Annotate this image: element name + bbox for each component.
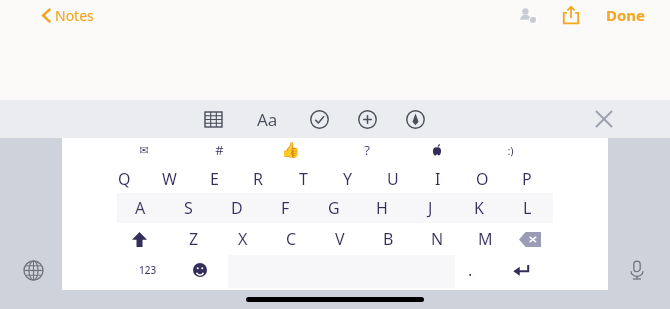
button[interactable]: B xyxy=(369,225,407,253)
button[interactable]: Apple xyxy=(421,138,453,162)
staticText: Y xyxy=(343,168,353,190)
button[interactable]: X xyxy=(224,225,262,253)
button[interactable]: Markup xyxy=(398,102,432,136)
button[interactable]: Table xyxy=(196,102,230,136)
button[interactable]: U xyxy=(374,164,412,194)
staticText: Q xyxy=(118,168,131,190)
staticText: D xyxy=(231,197,243,219)
staticText: M xyxy=(478,228,493,250)
staticText: V xyxy=(335,228,345,250)
staticText: R xyxy=(253,168,263,190)
staticText: U xyxy=(387,168,399,190)
button[interactable]: ? xyxy=(351,138,383,162)
button[interactable]: D xyxy=(218,193,256,223)
button[interactable]: K xyxy=(460,193,498,223)
staticText: ✉ xyxy=(139,144,149,157)
staticText: W xyxy=(162,168,177,190)
staticText: 123 xyxy=(139,263,157,277)
button[interactable]: R xyxy=(239,164,277,194)
staticText: Notes xyxy=(55,6,94,25)
button[interactable]: Emoji xyxy=(184,255,216,285)
button[interactable]: S xyxy=(169,193,207,223)
staticText: 👍 xyxy=(281,141,300,159)
button[interactable]: G xyxy=(315,193,353,223)
staticText: O xyxy=(476,168,489,190)
button[interactable]: Q xyxy=(105,164,143,194)
staticText: P xyxy=(522,168,532,190)
staticText: B xyxy=(383,228,394,250)
button[interactable]: N xyxy=(418,225,456,253)
button[interactable]: A xyxy=(121,193,159,223)
button[interactable]: F xyxy=(266,193,304,223)
button[interactable]: Shift xyxy=(122,225,156,253)
staticText: :) xyxy=(507,143,514,158)
staticText: Z xyxy=(189,228,199,250)
button[interactable]: Y xyxy=(329,164,367,194)
staticText: Aa xyxy=(257,108,278,131)
staticText: F xyxy=(281,197,290,219)
button[interactable]: V xyxy=(321,225,359,253)
button[interactable]: E xyxy=(195,164,233,194)
button[interactable]: W xyxy=(150,164,188,194)
button[interactable]: Add attachment xyxy=(350,102,384,136)
button[interactable]: Aa xyxy=(250,102,284,136)
button[interactable]: J xyxy=(411,193,449,223)
button[interactable]: M xyxy=(466,225,504,253)
button[interactable]: Share xyxy=(556,0,586,30)
button[interactable]: C xyxy=(272,225,310,253)
staticText: N xyxy=(431,228,444,250)
staticText: # xyxy=(215,141,224,159)
staticText: C xyxy=(286,228,297,250)
staticText: A xyxy=(135,197,146,219)
button[interactable]: :) xyxy=(494,138,526,162)
button[interactable]: Return xyxy=(502,255,540,285)
button[interactable]: Dictation xyxy=(622,255,652,285)
button[interactable]: Close keyboard xyxy=(588,103,620,135)
button[interactable]: 👍 xyxy=(274,138,306,162)
button[interactable]: Z xyxy=(175,225,213,253)
staticText: I xyxy=(435,168,441,190)
button[interactable]: ✉ xyxy=(128,138,160,162)
button[interactable]: Notes xyxy=(40,3,96,28)
button[interactable]: L xyxy=(508,193,546,223)
staticText: L xyxy=(523,197,532,219)
button[interactable]: Checklist xyxy=(302,102,336,136)
button[interactable]: # xyxy=(203,138,235,162)
staticText: X xyxy=(238,228,248,250)
staticText: K xyxy=(474,197,484,219)
staticText: S xyxy=(184,197,193,219)
button[interactable]: Backspace xyxy=(510,225,550,253)
staticText: G xyxy=(328,197,340,219)
staticText: Done xyxy=(606,5,646,25)
button[interactable]: . xyxy=(457,255,483,285)
staticText: E xyxy=(210,168,219,190)
button[interactable]: Done xyxy=(596,1,656,29)
button[interactable]: Add people xyxy=(512,0,542,30)
staticText: T xyxy=(299,168,308,190)
staticText: J xyxy=(428,197,433,219)
button[interactable]: 123 xyxy=(128,255,168,285)
button[interactable]: I xyxy=(419,164,457,194)
staticText: ? xyxy=(364,141,370,159)
button[interactable]: P xyxy=(508,164,546,194)
button[interactable]: Switch keyboard xyxy=(18,255,48,285)
staticText: . xyxy=(468,259,473,281)
staticText: H xyxy=(376,197,388,219)
button[interactable]: T xyxy=(284,164,322,194)
button[interactable]: O xyxy=(463,164,501,194)
button[interactable]: H xyxy=(363,193,401,223)
